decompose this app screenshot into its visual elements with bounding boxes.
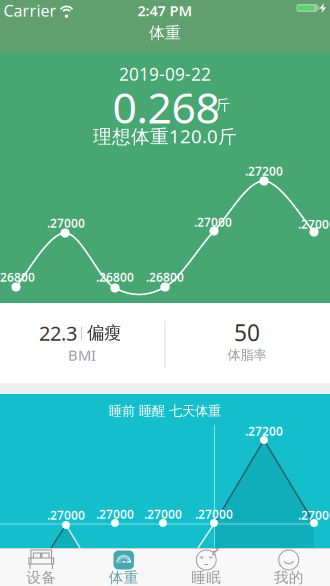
staticText: 斤 bbox=[215, 96, 230, 114]
button[interactable]: 睡眠 bbox=[165, 548, 247, 586]
staticText: BMI bbox=[68, 345, 96, 365]
staticText: .27000 bbox=[144, 506, 182, 522]
staticText: .27000 bbox=[47, 215, 85, 231]
staticText: .26800 bbox=[0, 269, 35, 285]
staticText: .27200 bbox=[245, 423, 283, 439]
staticText: .26800 bbox=[96, 269, 134, 285]
staticText: Carrier bbox=[3, 0, 56, 21]
staticText: 0.268 bbox=[112, 79, 219, 135]
staticText: 睡眠 bbox=[191, 568, 221, 586]
staticText: 22.3 bbox=[39, 320, 77, 346]
staticText: 睡前 睡醒 七天体重 bbox=[109, 403, 221, 419]
staticText: .27000 bbox=[194, 214, 232, 230]
button[interactable]: 设备 bbox=[0, 548, 82, 586]
staticText: 偏瘦 bbox=[87, 322, 121, 344]
staticText: .27000 bbox=[195, 506, 233, 522]
staticText: 2019-09-22 bbox=[119, 62, 211, 85]
staticText: .27000 bbox=[298, 507, 330, 523]
staticText: .26800 bbox=[146, 269, 184, 285]
staticText: 理想体重120.0斤 bbox=[93, 124, 237, 148]
staticText: .27200 bbox=[245, 163, 283, 179]
button[interactable]: 体重 bbox=[82, 548, 165, 586]
staticText: 2:47 PM bbox=[137, 1, 192, 20]
staticText: 体重 bbox=[109, 568, 139, 586]
staticText: 50 bbox=[234, 317, 260, 347]
staticText: 体脂率 bbox=[227, 347, 266, 363]
staticText: 我的 bbox=[274, 568, 304, 586]
staticText: 体重 bbox=[149, 23, 181, 43]
button[interactable]: 我的 bbox=[247, 548, 330, 586]
staticText: 设备 bbox=[26, 568, 56, 586]
staticText: .27000 bbox=[298, 216, 330, 232]
staticText: .27000 bbox=[47, 507, 85, 523]
staticText: .27000 bbox=[96, 506, 134, 522]
